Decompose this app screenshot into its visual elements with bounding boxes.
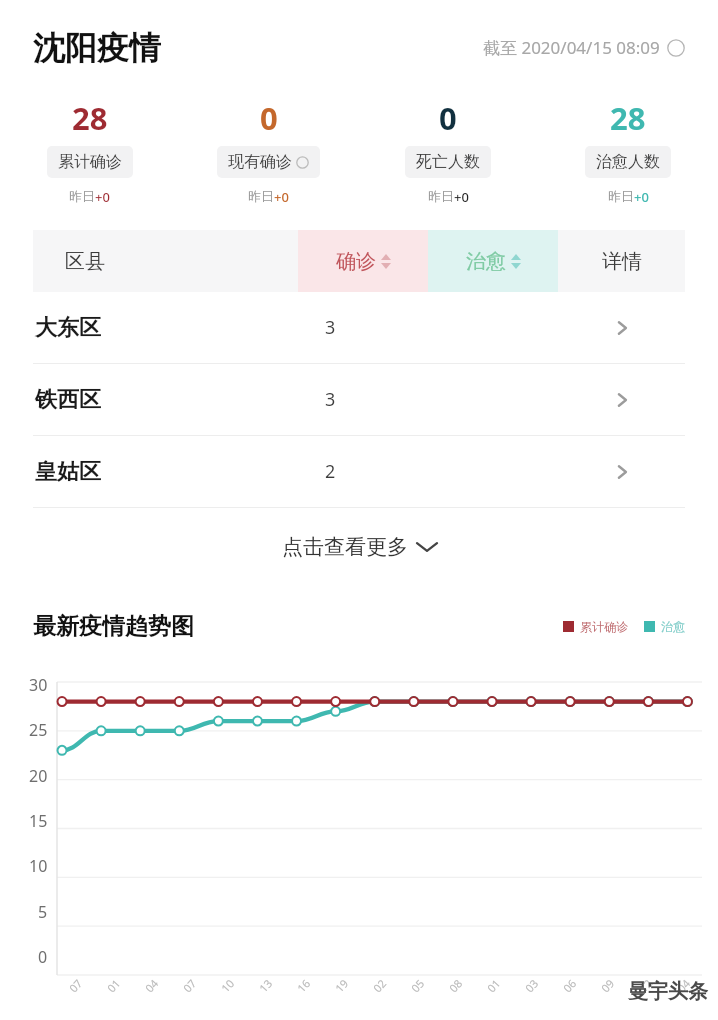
staticText: 区县 bbox=[65, 249, 105, 274]
button[interactable]: 28 bbox=[538, 97, 718, 206]
staticText: 12 bbox=[636, 976, 655, 995]
button[interactable]: 28 bbox=[0, 97, 179, 206]
staticText: 19 bbox=[332, 976, 351, 995]
staticText: 28 bbox=[72, 97, 108, 139]
staticText: 昨日 bbox=[248, 188, 274, 204]
button[interactable]: 皇姑区 bbox=[0, 436, 718, 507]
staticText: 06 bbox=[560, 976, 579, 995]
staticText: 铁西区 bbox=[35, 386, 101, 414]
other: Detail bbox=[615, 460, 629, 484]
staticText: 详情 bbox=[602, 249, 642, 274]
button[interactable]: 治愈 bbox=[428, 230, 558, 292]
staticText: +0 bbox=[454, 188, 469, 206]
staticText: 02 bbox=[370, 976, 389, 995]
staticText: 3 bbox=[325, 315, 336, 340]
button[interactable]: 铁西区 bbox=[0, 364, 718, 435]
staticText: 03 bbox=[522, 976, 541, 995]
staticText: 曼宇头条 bbox=[628, 979, 708, 1004]
button[interactable]: 确诊 bbox=[298, 230, 428, 292]
staticText: 01 bbox=[104, 976, 123, 995]
button[interactable]: 0 bbox=[179, 97, 358, 206]
staticText: 截至 2020/04/15 08:09 bbox=[483, 36, 660, 59]
staticText: 昨日 bbox=[608, 188, 634, 204]
staticText: 最新疫情趋势图 bbox=[33, 612, 194, 641]
staticText: 05 bbox=[408, 976, 427, 995]
staticText: 现有确诊 bbox=[228, 152, 292, 172]
staticText: 25 bbox=[29, 719, 48, 741]
staticText: 累计确诊 bbox=[580, 619, 628, 634]
staticText: 10 bbox=[29, 855, 48, 877]
staticText: 28 bbox=[610, 97, 646, 139]
staticText: 0 bbox=[439, 97, 457, 139]
staticText: 15 bbox=[29, 810, 48, 832]
other: Help bbox=[667, 39, 685, 57]
staticText: 治愈人数 bbox=[596, 152, 660, 172]
staticText: 13 bbox=[256, 976, 275, 995]
staticText: 大东区 bbox=[35, 314, 101, 342]
staticText: 04 bbox=[142, 976, 161, 995]
staticText: 0 bbox=[38, 946, 48, 968]
staticText: 累计确诊 bbox=[58, 152, 122, 172]
other: Detail bbox=[615, 316, 629, 340]
staticText: 07 bbox=[180, 976, 199, 995]
staticText: 昨日 bbox=[69, 188, 95, 204]
staticText: 16 bbox=[294, 976, 313, 995]
staticText: 治愈 bbox=[661, 619, 685, 634]
staticText: 20 bbox=[29, 765, 48, 787]
staticText: 皇姑区 bbox=[35, 458, 101, 486]
staticText: 01 bbox=[484, 976, 503, 995]
staticText: +0 bbox=[634, 188, 649, 206]
staticText: 07 bbox=[66, 976, 85, 995]
staticText: 沈阳疫情 bbox=[33, 28, 161, 68]
staticText: 2 bbox=[325, 459, 336, 484]
staticText: 0 bbox=[260, 97, 278, 139]
button[interactable]: 大东区 bbox=[0, 292, 718, 363]
staticText: 5 bbox=[38, 901, 48, 923]
staticText: 04 bbox=[674, 976, 693, 995]
staticText: 治愈 bbox=[466, 249, 506, 274]
staticText: 3 bbox=[325, 387, 336, 412]
other: Detail bbox=[615, 388, 629, 412]
staticText: 30 bbox=[29, 674, 48, 696]
staticText: 死亡人数 bbox=[416, 152, 480, 172]
staticText: 09 bbox=[598, 976, 617, 995]
other: Help bbox=[296, 156, 309, 169]
staticText: 10 bbox=[218, 976, 237, 995]
button[interactable]: 0 bbox=[358, 97, 538, 206]
staticText: +0 bbox=[274, 188, 289, 206]
staticText: 08 bbox=[446, 976, 465, 995]
staticText: 点击查看更多 bbox=[282, 534, 408, 560]
button[interactable]: 点击查看更多 bbox=[0, 508, 718, 586]
button[interactable]: 截至 2020/04/15 08:09 bbox=[483, 36, 685, 59]
staticText: 确诊 bbox=[336, 249, 376, 274]
staticText: 昨日 bbox=[428, 188, 454, 204]
staticText: +0 bbox=[95, 188, 110, 206]
